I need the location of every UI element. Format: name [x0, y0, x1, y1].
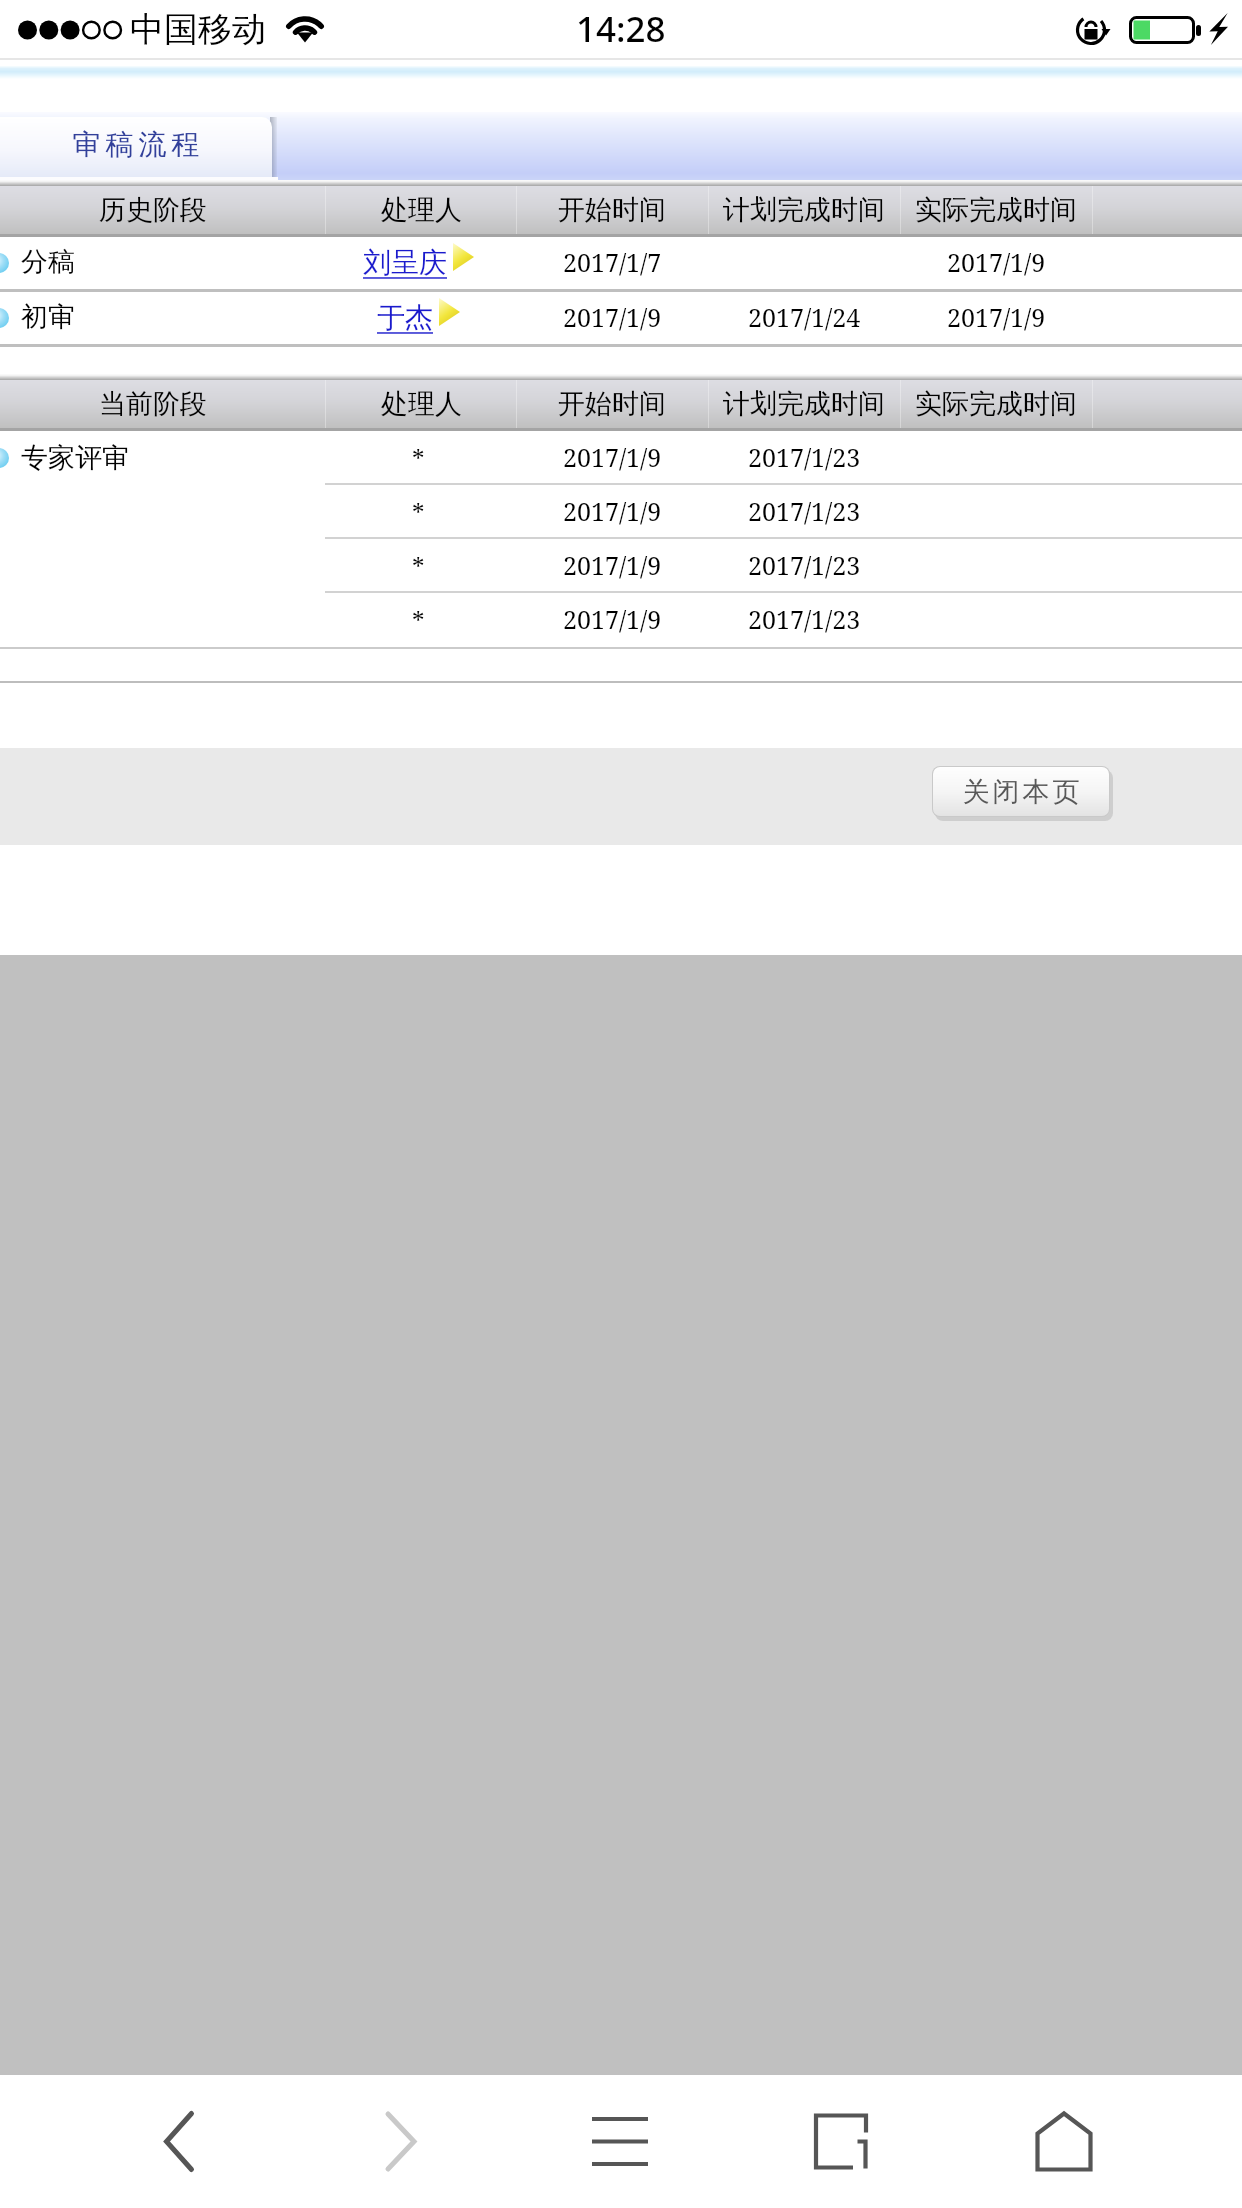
staticText: 2017/1/9 [947, 245, 1046, 279]
staticText: 2017/1/9 [563, 494, 662, 528]
staticText: 历史阶段 [99, 193, 207, 227]
staticText: 2017/1/23 [748, 602, 861, 636]
staticText: 开始时间 [558, 387, 666, 421]
staticText: 2017/1/9 [563, 300, 662, 334]
button[interactable]: 于杰 [377, 300, 456, 335]
staticText: 2017/1/7 [563, 245, 662, 279]
staticText: 刘呈庆 [363, 245, 447, 280]
button[interactable]: Home [964, 2075, 1164, 2208]
staticText: 处理人 [381, 387, 462, 421]
staticText: * [412, 549, 425, 583]
staticText: 2017/1/23 [748, 440, 861, 474]
staticText: * [412, 441, 425, 475]
staticText: 当前阶段 [99, 387, 207, 421]
staticText: 中国移动 [130, 8, 266, 51]
staticText: * [412, 495, 425, 529]
staticText: 2017/1/23 [748, 548, 861, 582]
staticText: 计划完成时间 [723, 387, 885, 421]
button[interactable]: Back [79, 2075, 279, 2208]
staticText: 2017/1/9 [563, 548, 662, 582]
staticText: 2017/1/23 [748, 494, 861, 528]
staticText: 实际完成时间 [915, 387, 1077, 421]
button[interactable] [0, 289, 1242, 344]
staticText: 2017/1/24 [748, 300, 861, 334]
staticText: 处理人 [381, 193, 462, 227]
button[interactable] [0, 539, 1242, 593]
staticText: 于杰 [377, 300, 433, 335]
staticText: 2017/1/9 [947, 300, 1046, 334]
staticText: 2017/1/9 [563, 440, 662, 474]
button[interactable]: Menu [520, 2075, 720, 2208]
button[interactable] [0, 593, 1242, 647]
staticText: 开始时间 [558, 193, 666, 227]
button[interactable] [0, 485, 1242, 539]
button[interactable]: 审稿流程 [0, 117, 272, 177]
staticText: * [412, 603, 425, 637]
staticText: 14:28 [576, 5, 666, 53]
staticText: 初审 [21, 300, 75, 334]
staticText: 2017/1/9 [563, 602, 662, 636]
button[interactable] [0, 234, 1242, 289]
staticText: 关闭本页 [961, 775, 1081, 809]
button[interactable]: 关闭本页 [933, 767, 1109, 816]
button[interactable]: Tabs [741, 2075, 941, 2208]
staticText: 计划完成时间 [723, 193, 885, 227]
button[interactable]: Forward [301, 2075, 501, 2208]
staticText: 审稿流程 [70, 127, 202, 162]
staticText: 分稿 [21, 245, 75, 279]
staticText: 专家评审 [21, 441, 129, 475]
button[interactable]: 刘呈庆 [363, 245, 470, 280]
staticText: 实际完成时间 [915, 193, 1077, 227]
button[interactable] [0, 431, 1242, 485]
